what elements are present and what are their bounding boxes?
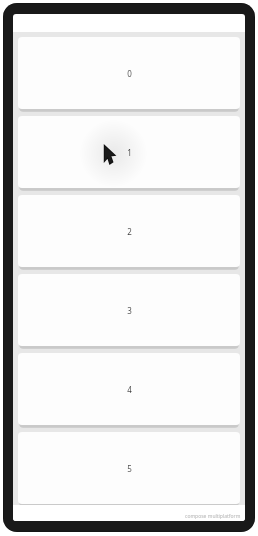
button[interactable]: 2 <box>18 195 240 267</box>
staticText: 0 <box>127 68 132 79</box>
button[interactable]: 1 <box>18 116 240 188</box>
staticText: 4 <box>127 384 132 395</box>
button[interactable]: 3 <box>18 274 240 346</box>
button[interactable]: 5 <box>18 432 240 504</box>
staticText: compose multiplatform <box>185 513 241 520</box>
button[interactable]: 0 <box>18 37 240 109</box>
staticText: 1 <box>127 147 132 158</box>
staticText: 5 <box>127 463 132 474</box>
other: Pointer <box>104 146 117 164</box>
staticText: 3 <box>127 305 132 316</box>
staticText: 2 <box>127 226 132 237</box>
button[interactable]: 4 <box>18 353 240 425</box>
